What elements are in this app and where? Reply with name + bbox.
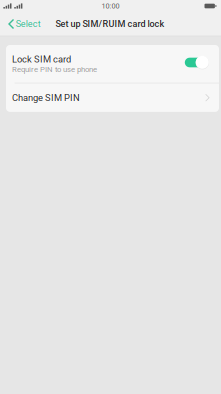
staticText: Set up SIM/RUIM card lock [55,19,164,29]
staticText: Select [16,19,41,29]
staticText: Change SIM PIN [12,92,80,103]
staticText: Require PIN to use phone [12,65,97,74]
staticText: Lock SIM card [12,54,71,65]
button[interactable]: Lock SIM card [6,45,219,83]
button[interactable]: Change SIM PIN [6,83,219,112]
button[interactable]: Select [0,12,46,35]
staticText: 10:00 [101,2,119,10]
